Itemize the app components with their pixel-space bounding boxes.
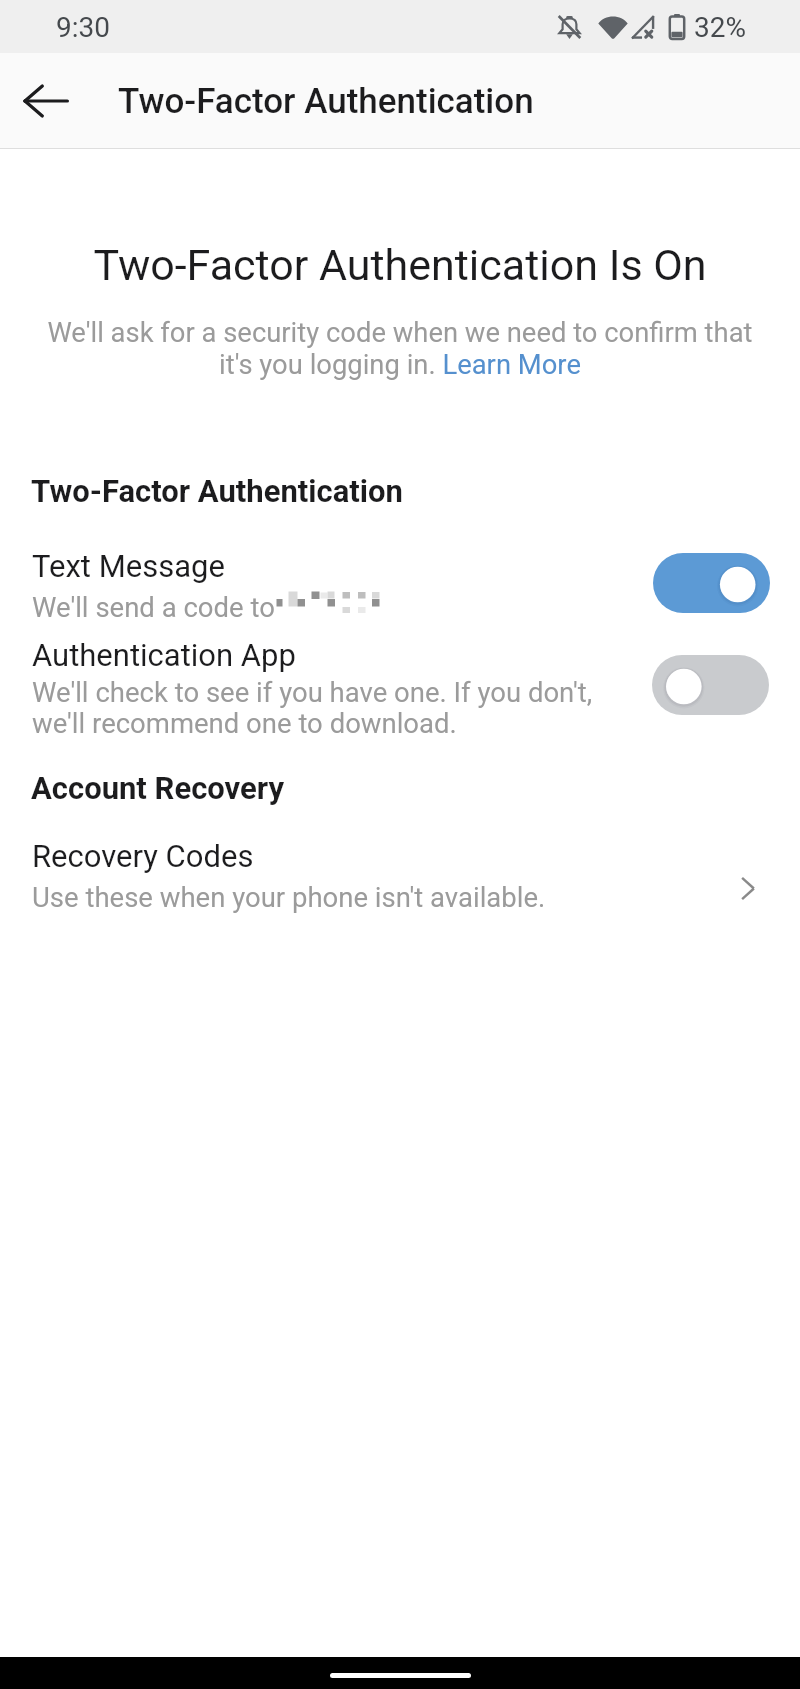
staticText: Authentication App (32, 637, 296, 673)
staticText: Two-Factor Authentication (31, 473, 403, 509)
staticText: We'll send a code to (32, 591, 275, 623)
button[interactable]: Text Message on (653, 553, 770, 613)
button[interactable]: Authentication App off (652, 655, 769, 715)
staticText: Account Recovery (31, 770, 285, 806)
staticText: We'll ask for a security code when we ne… (40, 317, 760, 380)
staticText: Two-Factor Authentication Is On (0, 240, 800, 290)
button[interactable]: Recovery Codes (0, 828, 800, 920)
button[interactable]: Authentication App (0, 628, 800, 745)
button[interactable]: Back (6, 61, 86, 141)
staticText: Text Message (32, 548, 225, 584)
staticText: Recovery Codes (32, 838, 254, 874)
staticText: 32% (694, 11, 746, 44)
staticText: We'll check to see if you have one. If y… (32, 676, 593, 739)
button[interactable]: Text Message (0, 535, 800, 625)
staticText: Two-Factor Authentication (118, 81, 534, 122)
staticText: 9:30 (56, 11, 110, 44)
staticText: Use these when your phone isn't availabl… (32, 881, 546, 913)
